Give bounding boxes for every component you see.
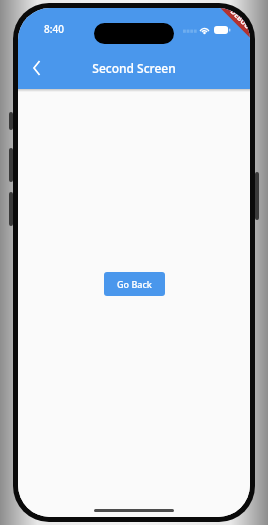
staticText: 8:40 (44, 22, 64, 36)
staticText: DEBUG (228, 8, 250, 32)
button[interactable]: Go Back (104, 272, 165, 296)
staticText: Second Screen (92, 60, 176, 76)
staticText: Go Back (117, 278, 152, 290)
button[interactable]: Back (18, 49, 56, 87)
